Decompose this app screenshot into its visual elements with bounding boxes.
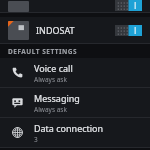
button[interactable]: Data connection — [0, 118, 150, 147]
staticText: Data connection — [34, 122, 104, 134]
staticText: Always ask — [34, 105, 67, 114]
staticText: DEFAULT SETTINGS — [8, 47, 78, 56]
staticText: Voice call — [34, 62, 73, 74]
button[interactable]: Toggle SIM — [115, 25, 142, 36]
button[interactable]: Toggle SIM — [115, 0, 142, 11]
button[interactable]: Voice call — [0, 58, 150, 87]
staticText: Messaging — [34, 92, 80, 104]
staticText: 3 — [34, 135, 38, 144]
staticText: Always ask — [34, 75, 67, 84]
button[interactable]: Toggle SIM — [0, 0, 150, 12]
button[interactable]: Messaging — [0, 88, 150, 117]
button[interactable]: INDOSAT — [0, 17, 150, 43]
staticText: INDOSAT — [36, 24, 75, 36]
